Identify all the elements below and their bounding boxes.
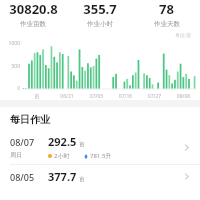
staticText: 06/21 — [52, 93, 82, 100]
staticText: 单位:亩 — [175, 32, 192, 39]
button[interactable]: 30820.8 — [0, 0, 66, 28]
staticText: 355.7 — [83, 0, 117, 18]
staticText: 08/07 — [10, 136, 35, 148]
staticText: 78 — [159, 0, 174, 18]
staticText: 08/05 — [10, 171, 35, 183]
staticText: 08/08 — [169, 93, 198, 100]
staticText: 作业亩数 — [20, 20, 46, 28]
staticText: 亩 — [79, 141, 85, 148]
staticText: 0 — [2, 85, 20, 92]
button[interactable]: 355.7 — [66, 0, 133, 28]
staticText: 2小时 — [54, 152, 70, 160]
staticText: 亩 — [22, 93, 52, 99]
staticText: 作业天数 — [154, 20, 180, 28]
button[interactable]: 78 — [133, 0, 200, 28]
staticText: 30820.8 — [9, 0, 58, 18]
staticText: 292.5 — [48, 134, 77, 149]
staticText: 377.7 — [48, 169, 77, 184]
staticText: 每日作业 — [10, 113, 50, 126]
button[interactable]: 08/05 — [0, 165, 200, 188]
staticText: 作业小时 — [87, 20, 113, 28]
staticText: 500 — [2, 63, 20, 70]
staticText: 781.5升 — [90, 152, 112, 160]
staticText: 周日 — [10, 151, 22, 159]
staticText: 07/16 — [111, 93, 140, 100]
staticText: 07/27 — [140, 93, 169, 100]
staticText: 亩 — [79, 176, 85, 183]
button[interactable]: 08/07 — [0, 130, 200, 164]
staticText: 07/03 — [82, 93, 111, 100]
staticText: 1000 — [2, 40, 20, 47]
